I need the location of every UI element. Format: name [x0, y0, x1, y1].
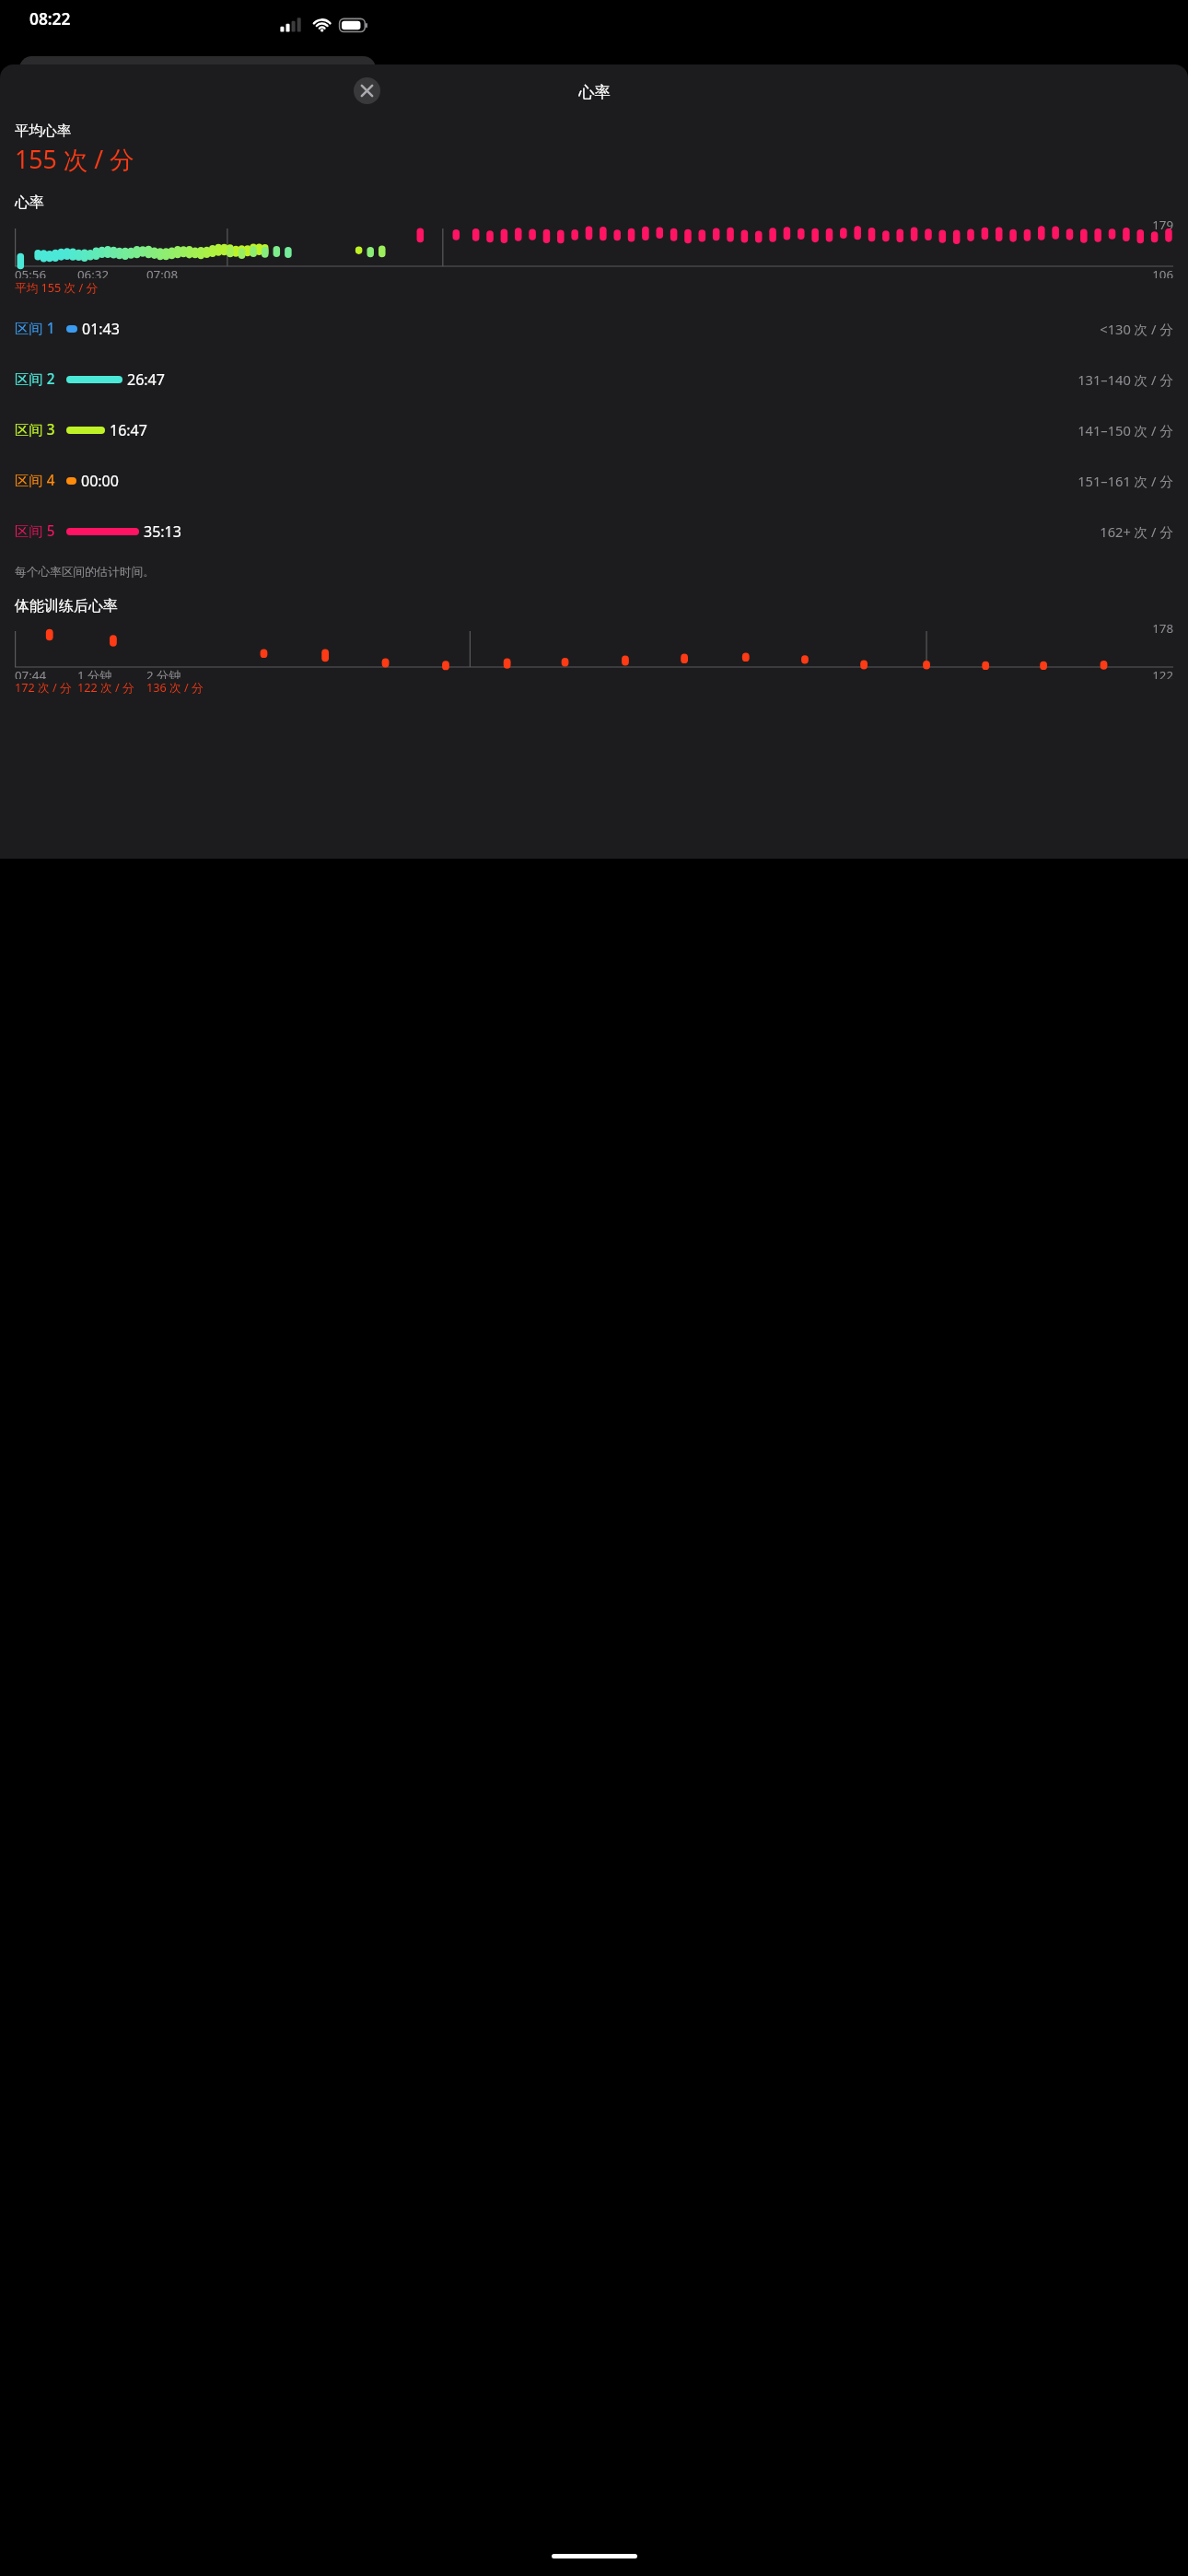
staticText: 区间 5 — [15, 521, 55, 541]
staticText: 平均 155 次 / 分 — [15, 279, 99, 295]
button[interactable]: 区间 3 — [0, 404, 1188, 455]
staticText: 122 — [1152, 667, 1173, 679]
staticText: 08:22 — [29, 7, 71, 29]
staticText: 131–140 次 / 分 — [1077, 370, 1173, 389]
button[interactable]: 区间 4 — [0, 455, 1188, 506]
button[interactable]: 关闭 — [354, 77, 380, 104]
staticText: 区间 1 — [15, 319, 55, 338]
button[interactable]: 区间 2 — [0, 354, 1188, 404]
staticText: 1 分钟 — [77, 667, 112, 679]
staticText: 区间 3 — [15, 420, 55, 439]
staticText: 05:56 — [15, 266, 47, 278]
staticText: 122 次 / 分 — [77, 679, 134, 695]
staticText: 心率 — [15, 193, 44, 212]
staticText: 16:47 — [110, 420, 147, 440]
staticText: 心率 — [578, 82, 611, 102]
staticText: 06:32 — [77, 266, 110, 278]
staticText: 35:13 — [144, 521, 181, 542]
staticText: 00:00 — [81, 471, 119, 491]
staticText: 151–161 次 / 分 — [1077, 472, 1173, 490]
staticText: 162+ 次 / 分 — [1100, 522, 1173, 541]
staticText: 01:43 — [82, 319, 120, 339]
staticText: 136 次 / 分 — [146, 679, 204, 695]
staticText: 体能训练后心率 — [15, 597, 118, 615]
staticText: 141–150 次 / 分 — [1077, 421, 1173, 439]
button[interactable]: 区间 5 — [0, 506, 1188, 556]
staticText: 179 — [1152, 217, 1173, 233]
staticText: <130 次 / 分 — [1100, 320, 1173, 338]
staticText: 平均心率 — [15, 122, 72, 139]
staticText: 07:08 — [146, 266, 179, 278]
staticText: 178 — [1152, 620, 1173, 637]
staticText: 172 次 / 分 — [15, 679, 72, 695]
staticText: 2 分钟 — [146, 667, 181, 679]
staticText: 区间 4 — [15, 471, 55, 490]
staticText: 07:44 — [15, 667, 47, 679]
staticText: 155 次 / 分 — [15, 142, 134, 175]
staticText: 区间 2 — [15, 369, 55, 389]
staticText: 106 — [1152, 266, 1173, 278]
staticText: 每个心率区间的估计时间。 — [15, 565, 155, 580]
button[interactable]: 区间 1 — [0, 303, 1188, 354]
staticText: 26:47 — [127, 369, 165, 390]
